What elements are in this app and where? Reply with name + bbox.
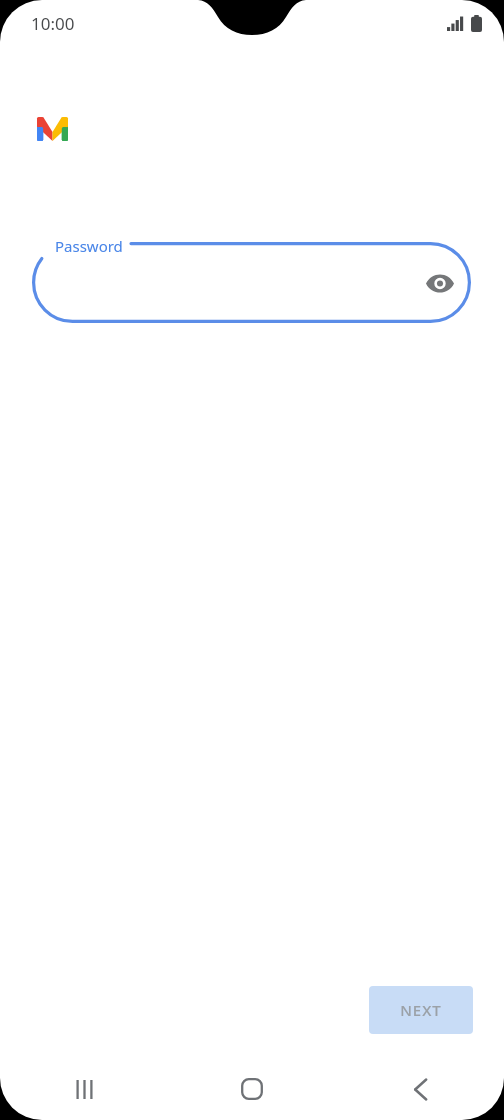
button[interactable]: NEXT [369,986,473,1034]
staticText: Password [55,236,123,256]
button[interactable]: Show password [418,261,462,305]
button[interactable]: Recent apps [0,1058,168,1120]
button[interactable]: Home [168,1058,336,1120]
staticText: NEXT [400,1000,442,1020]
button[interactable]: Show password [32,242,471,323]
button[interactable]: Back [336,1058,504,1120]
staticText: 10:00 [31,12,75,35]
